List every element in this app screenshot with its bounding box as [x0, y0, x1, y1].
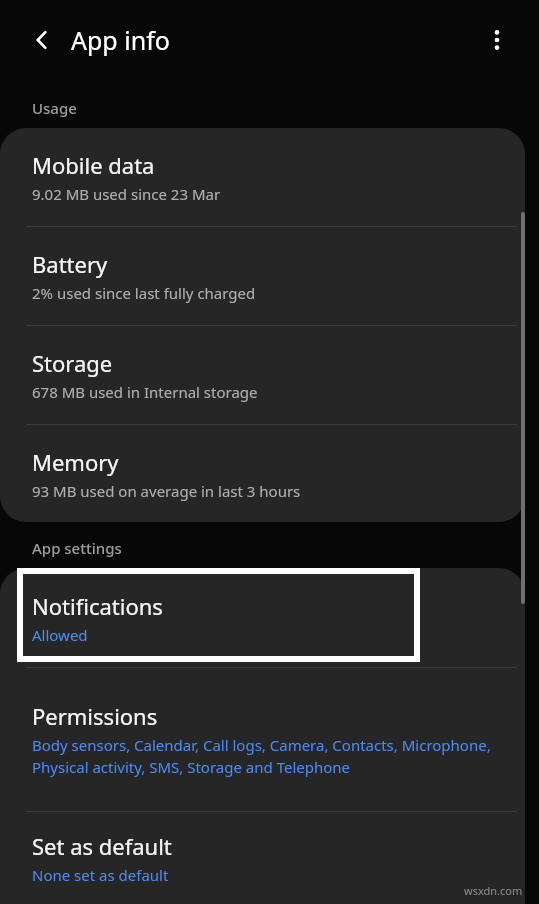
staticText: Mobile data: [32, 150, 155, 180]
staticText: 9.02 MB used since 23 Mar: [32, 184, 221, 204]
staticText: App settings: [32, 538, 122, 558]
staticText: Battery: [32, 249, 108, 279]
staticText: 678 MB used in Internal storage: [32, 382, 258, 402]
button[interactable]: More options: [475, 18, 519, 62]
staticText: Notifications: [32, 591, 163, 621]
staticText: App info: [71, 23, 170, 57]
button[interactable]: Notifications: [0, 568, 525, 667]
staticText: Permissions: [32, 701, 158, 731]
staticText: Body sensors, Calendar, Call logs, Camer…: [32, 735, 491, 778]
staticText: 93 MB used on average in last 3 hours: [32, 481, 301, 501]
staticText: Allowed: [32, 625, 88, 645]
button[interactable]: Back: [20, 18, 64, 62]
button[interactable]: Mobile data: [0, 128, 525, 226]
staticText: wsxdn.com: [464, 883, 523, 898]
staticText: 2% used since last fully charged: [32, 283, 256, 303]
button[interactable]: Set as default: [0, 812, 525, 904]
staticText: Set as default: [32, 831, 172, 861]
button[interactable]: Memory: [0, 425, 525, 522]
staticText: None set as default: [32, 865, 169, 885]
button[interactable]: Storage: [0, 326, 525, 424]
button[interactable]: Battery: [0, 227, 525, 325]
staticText: Storage: [32, 348, 113, 378]
staticText: Usage: [32, 98, 77, 118]
staticText: Memory: [32, 447, 119, 477]
button[interactable]: Permissions: [0, 668, 525, 811]
